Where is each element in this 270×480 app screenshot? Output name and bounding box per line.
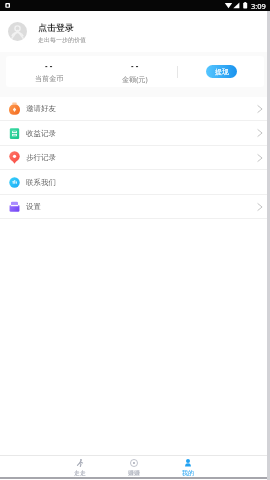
button[interactable]: 收益记录 xyxy=(0,121,270,145)
staticText: - - xyxy=(131,60,139,71)
staticText: 走出每一步的价值 xyxy=(38,36,86,44)
staticText: 金额(元) xyxy=(122,74,148,84)
button[interactable]: 联系我们 xyxy=(0,170,270,194)
staticText: - - xyxy=(45,60,53,71)
button[interactable]: 步行记录 xyxy=(0,146,270,169)
button[interactable]: 走走 xyxy=(53,458,107,477)
button[interactable]: 点击登录 xyxy=(0,11,270,52)
button[interactable]: 我的 xyxy=(161,458,215,477)
staticText: 我的 xyxy=(182,469,194,477)
staticText: 3:09 xyxy=(251,1,266,11)
staticText: 设置 xyxy=(26,202,41,211)
staticText: 联系我们 xyxy=(26,178,56,187)
staticText: 邀请好友 xyxy=(26,104,56,113)
button[interactable]: 设置 xyxy=(0,195,270,218)
staticText: 点击登录 xyxy=(38,22,74,33)
staticText: 当前金币 xyxy=(35,74,64,83)
staticText: 收益记录 xyxy=(26,129,56,138)
staticText: 赚赚 xyxy=(128,469,140,477)
button[interactable]: 提现 xyxy=(206,65,237,78)
staticText: 提现 xyxy=(215,67,229,76)
button[interactable]: 邀请好友 xyxy=(0,97,270,120)
staticText: 走走 xyxy=(74,469,86,477)
button[interactable]: 赚赚 xyxy=(107,458,161,477)
staticText: 步行记录 xyxy=(26,153,56,162)
